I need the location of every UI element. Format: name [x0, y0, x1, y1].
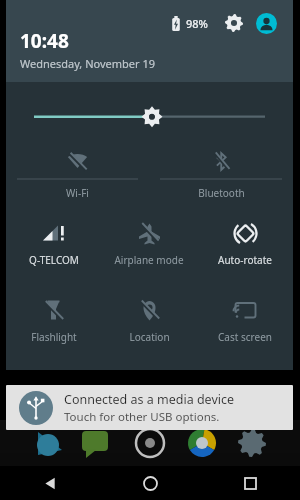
button[interactable]: Connected as a media device: [6, 385, 293, 430]
staticText: Flashlight: [31, 330, 77, 344]
staticText: Airplane mode: [114, 253, 184, 267]
staticText: Wi-Fi: [66, 186, 89, 200]
staticText: Bluetooth: [198, 186, 245, 200]
staticText: 10:48: [20, 28, 69, 54]
button[interactable]: Cast screen: [197, 289, 293, 366]
button[interactable]: User account: [255, 12, 277, 34]
button[interactable]: Bluetooth: [149, 144, 293, 212]
button[interactable]: Wi-Fi: [6, 144, 149, 212]
staticText: Auto-rotate: [218, 253, 272, 267]
staticText: Connected as a media device: [64, 391, 235, 408]
button[interactable]: Flashlight: [6, 289, 101, 366]
button[interactable]: Settings: [222, 11, 246, 35]
button[interactable]: Airplane mode: [101, 212, 197, 289]
staticText: Touch for other USB options.: [64, 409, 220, 425]
button[interactable]: Q-TELCOM: [6, 212, 101, 289]
button[interactable]: Recent apps: [200, 466, 300, 500]
staticText: 98%: [186, 16, 208, 31]
button[interactable]: Brightness: [6, 82, 293, 144]
staticText: Wednesday, November 19: [20, 56, 155, 71]
button[interactable]: Home: [100, 466, 200, 500]
staticText: Cast screen: [218, 330, 272, 344]
button[interactable]: Auto-rotate: [197, 212, 293, 289]
button[interactable]: Back: [0, 466, 100, 500]
staticText: Location: [129, 330, 170, 344]
button[interactable]: Location: [101, 289, 197, 366]
staticText: Q-TELCOM: [29, 253, 79, 267]
